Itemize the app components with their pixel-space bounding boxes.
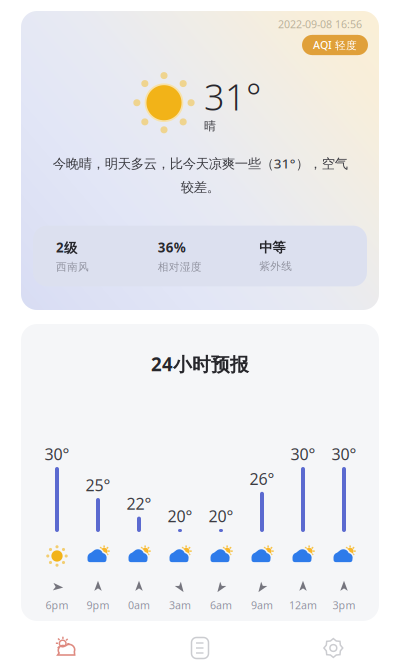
staticText: 6am bbox=[210, 598, 232, 612]
staticText: 0am bbox=[128, 598, 150, 612]
staticText: 紫外线 bbox=[259, 260, 292, 273]
staticText: 30° bbox=[290, 443, 315, 465]
staticText: 30° bbox=[331, 443, 356, 465]
staticText: 26° bbox=[249, 468, 274, 489]
staticText: 中等 bbox=[259, 239, 285, 256]
staticText: 22° bbox=[126, 493, 151, 514]
staticText: 3am bbox=[169, 598, 191, 612]
staticText: 今晚晴，明天多云，比今天凉爽一些（31°），空气 较差。 bbox=[52, 154, 347, 196]
button[interactable]: 天气 bbox=[0, 629, 133, 666]
button[interactable]: 城市列表 bbox=[133, 629, 267, 666]
staticText: AQI 轻度 bbox=[313, 38, 357, 52]
staticText: 3pm bbox=[332, 598, 355, 612]
staticText: 相对湿度 bbox=[158, 260, 202, 273]
staticText: 9pm bbox=[86, 598, 109, 612]
staticText: 36% bbox=[158, 239, 186, 256]
staticText: 30° bbox=[44, 443, 69, 465]
staticText: 6pm bbox=[45, 598, 68, 612]
staticText: 2022-09-08 16:56 bbox=[278, 17, 362, 31]
button[interactable]: AQI 轻度 bbox=[302, 35, 368, 55]
staticText: 2级 bbox=[56, 239, 77, 256]
staticText: 12am bbox=[289, 598, 317, 612]
staticText: 20° bbox=[167, 505, 192, 527]
button[interactable]: 设置 bbox=[267, 629, 400, 666]
staticText: 24小时预报 bbox=[151, 352, 249, 376]
staticText: 31° bbox=[204, 73, 261, 120]
staticText: 9am bbox=[251, 598, 273, 612]
staticText: 20° bbox=[208, 505, 233, 527]
staticText: 晴 bbox=[204, 118, 216, 133]
staticText: 25° bbox=[85, 474, 110, 496]
staticText: 西南风 bbox=[56, 260, 89, 273]
